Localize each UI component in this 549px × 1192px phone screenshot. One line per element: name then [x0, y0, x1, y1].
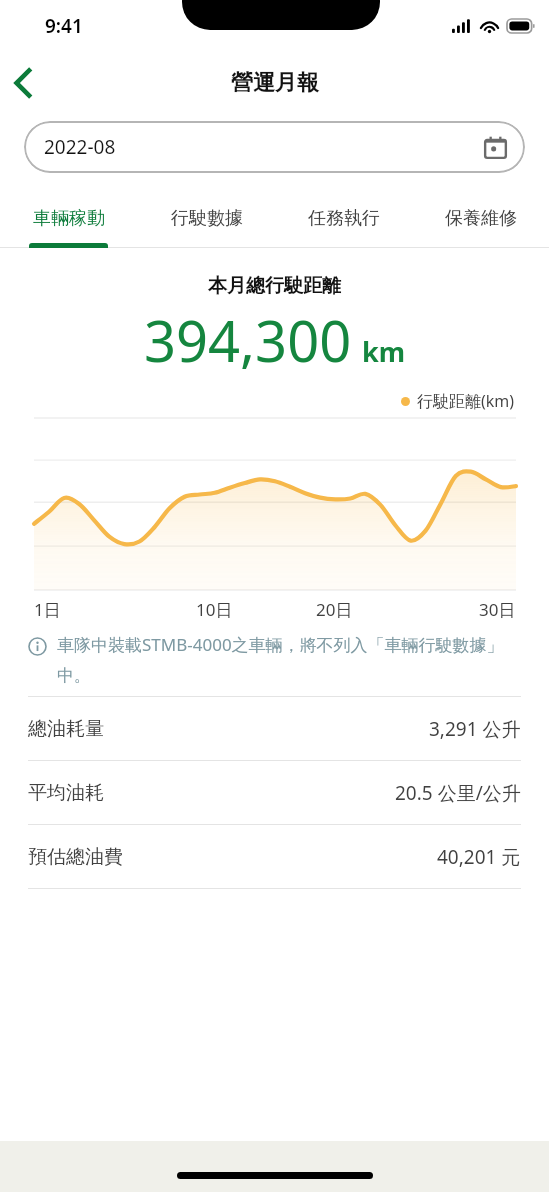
staticText: 車輛稼動: [33, 207, 105, 230]
button[interactable]: 車輛稼動: [0, 193, 138, 243]
staticText: 1日: [34, 598, 61, 621]
staticText: 3,291 公升: [429, 716, 521, 742]
staticText: 本月總行駛距離: [208, 274, 341, 298]
staticText: 2022-08: [44, 134, 116, 160]
staticText: 30日: [479, 598, 516, 621]
button[interactable]: 總油耗量: [28, 697, 521, 760]
staticText: 10日: [196, 598, 233, 621]
button[interactable]: 保養維修: [412, 193, 549, 243]
staticText: 任務執行: [308, 207, 380, 230]
button[interactable]: Back: [0, 60, 46, 106]
staticText: 40,201 元: [437, 844, 521, 870]
staticText: 20日: [316, 598, 353, 621]
staticText: 總油耗量: [28, 717, 104, 741]
staticText: km: [362, 333, 406, 370]
button[interactable]: 2022-08: [24, 121, 525, 173]
staticText: 9:41: [45, 13, 83, 39]
staticText: 營運月報: [231, 69, 319, 97]
button[interactable]: 行駛數據: [138, 193, 275, 243]
button[interactable]: 預估總油費: [28, 825, 521, 888]
staticText: 平均油耗: [28, 781, 104, 805]
staticText: 車隊中裝載STMB-4000之車輛，將不列入「車輛行駛數據」中。: [57, 633, 521, 686]
staticText: 20.5 公里/公升: [395, 780, 521, 806]
staticText: 保養維修: [445, 207, 517, 230]
staticText: 行駛數據: [171, 207, 243, 230]
button[interactable]: 任務執行: [275, 193, 412, 243]
staticText: 394,300: [144, 302, 352, 378]
staticText: 預估總油費: [28, 845, 123, 869]
button[interactable]: 平均油耗: [28, 761, 521, 824]
staticText: 行駛距離(km): [417, 390, 515, 412]
